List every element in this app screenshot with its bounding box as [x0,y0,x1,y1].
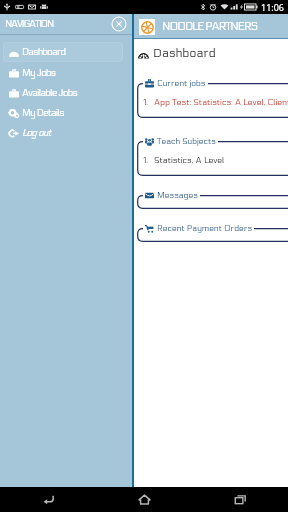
staticText: Dashboard [153,46,217,61]
staticText: NAVIGATION [5,18,53,30]
staticText: Current jobs [157,78,206,88]
button[interactable]: Back [0,487,96,512]
staticText: 11:06 [261,1,285,13]
button[interactable]: Recent apps [192,487,288,512]
button[interactable]: Close navigation [111,16,127,32]
button[interactable]: Available Jobs [3,83,123,103]
button[interactable]: Log out [3,123,123,143]
staticText: App Test: Statistics: A Level, Client [154,97,288,107]
staticText: 1. [143,97,149,107]
button[interactable]: My Details [3,103,123,123]
button[interactable]: My Jobs [3,63,123,83]
staticText: 1. [143,155,149,165]
staticText: Messages [157,190,198,200]
button[interactable]: Home [96,487,192,512]
staticText: My Details [22,107,64,119]
staticText: Available Jobs [22,87,78,99]
staticText: Log out [22,127,51,139]
button[interactable]: Dashboard [3,42,123,62]
staticText: Recent Payment Orders [157,223,252,233]
staticText: Dashboard [22,46,66,58]
staticText: My Jobs [22,67,56,79]
staticText: Statistics, A Level [154,155,225,165]
staticText: Teach Subjects [157,136,216,146]
staticText: NOODLE PARTNERS [162,19,257,33]
